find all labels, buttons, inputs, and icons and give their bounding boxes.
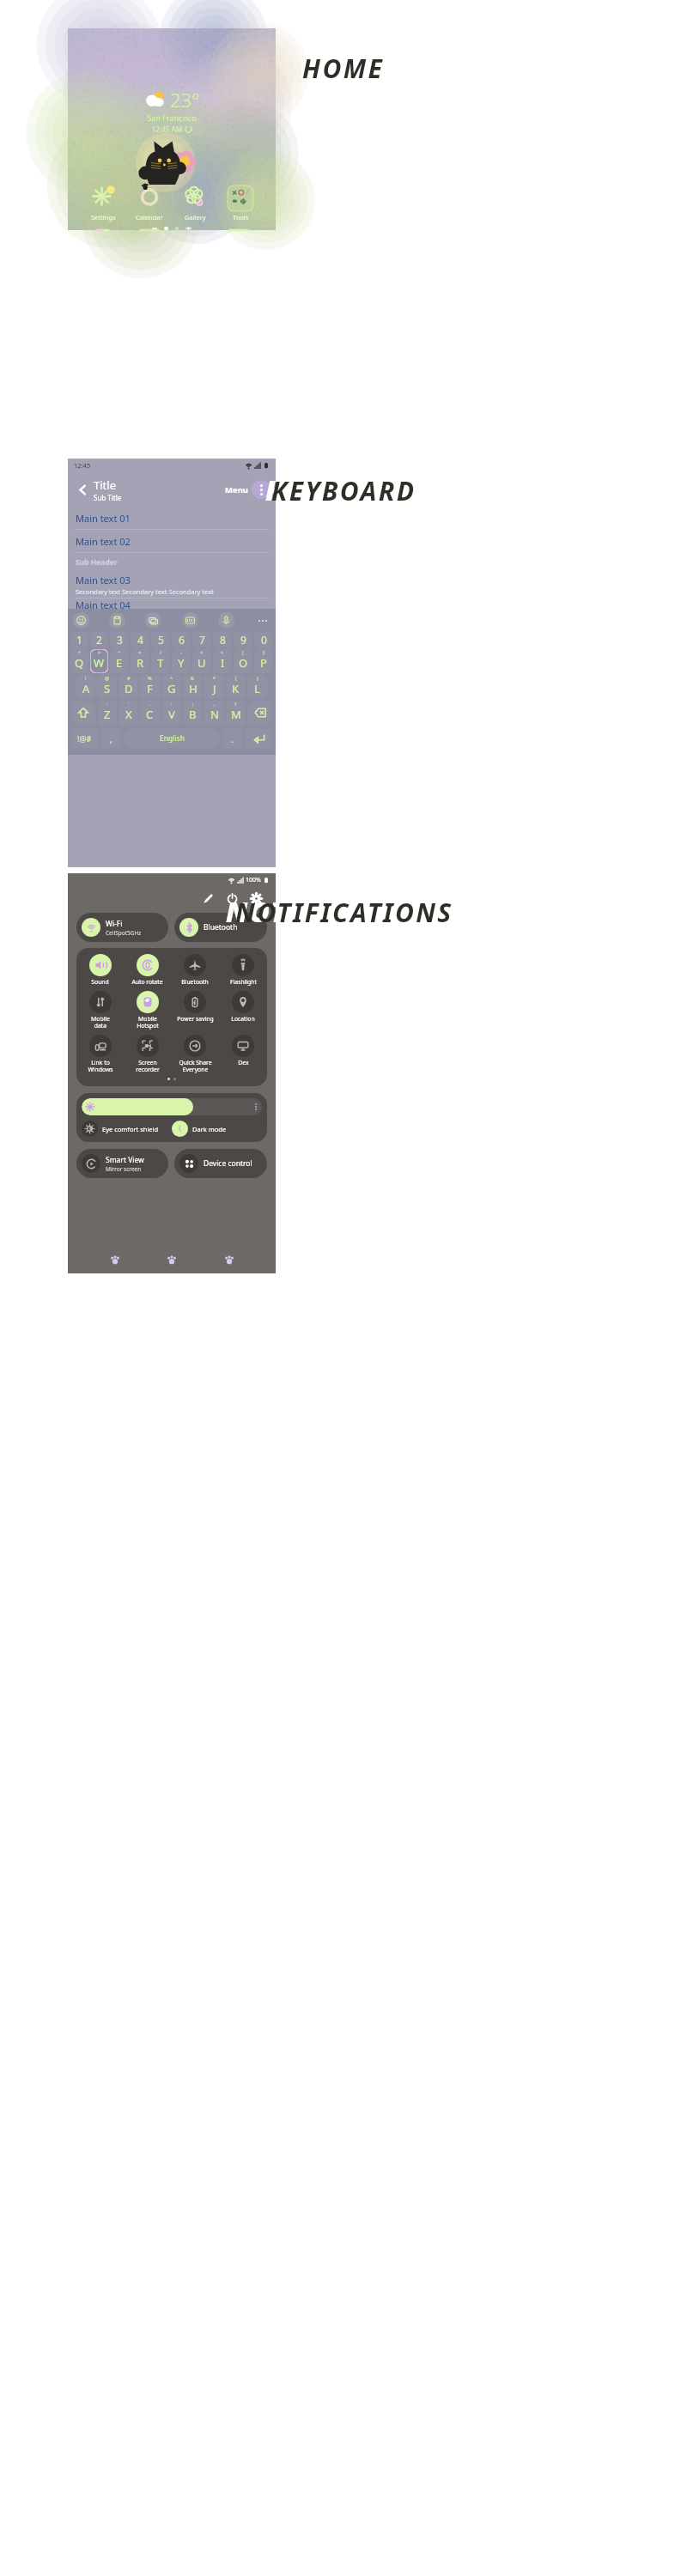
button[interactable]: + bbox=[70, 649, 88, 673]
button[interactable]: Location bbox=[219, 991, 267, 1023]
button[interactable]: 5 bbox=[151, 632, 170, 647]
button[interactable]: Power bbox=[224, 890, 240, 906]
button[interactable]: Sound bbox=[76, 954, 124, 986]
button[interactable]: Enter bbox=[246, 729, 272, 748]
button[interactable]: Edit bbox=[200, 890, 216, 906]
button[interactable]: 0 bbox=[254, 632, 273, 647]
button[interactable]: [ bbox=[234, 649, 252, 673]
button[interactable]: × bbox=[90, 649, 108, 673]
button[interactable]: Power saving bbox=[171, 991, 219, 1023]
button[interactable]: 6 bbox=[172, 632, 191, 647]
button[interactable] bbox=[82, 1098, 262, 1115]
staticText: 6 bbox=[179, 633, 185, 647]
button[interactable]: Calendar bbox=[134, 185, 165, 222]
button[interactable]: Backspace bbox=[248, 702, 272, 724]
button[interactable]: . bbox=[222, 729, 242, 748]
button[interactable]: 7 bbox=[192, 632, 211, 647]
button[interactable]: * bbox=[204, 675, 224, 699]
button[interactable]: English bbox=[125, 729, 219, 748]
button[interactable]: - bbox=[172, 649, 191, 673]
button[interactable]: ÷ bbox=[110, 649, 129, 673]
button[interactable]: Eye comfort shield bbox=[82, 1121, 172, 1137]
button[interactable]: Auto rotate bbox=[124, 954, 171, 986]
button[interactable]: Smart View bbox=[76, 1149, 168, 1178]
button[interactable]: Shift bbox=[71, 702, 95, 724]
button[interactable]: ! bbox=[76, 675, 95, 699]
button[interactable]: & bbox=[183, 675, 203, 699]
button[interactable]: Settings bbox=[88, 185, 118, 222]
staticText: ! bbox=[85, 675, 87, 681]
button[interactable]: , bbox=[204, 701, 224, 725]
button[interactable]: Home bbox=[161, 1249, 182, 1270]
button[interactable]: Emoji bbox=[73, 612, 89, 629]
button[interactable]: Quick Share Everyone bbox=[171, 1035, 219, 1073]
button[interactable]: - bbox=[98, 701, 117, 725]
button[interactable]: Mobile data bbox=[76, 991, 124, 1030]
button[interactable]: Gallery bbox=[180, 185, 210, 222]
button[interactable]: < bbox=[192, 649, 211, 673]
button[interactable]: Main text 01 bbox=[68, 507, 276, 529]
button[interactable]: GIF bbox=[182, 612, 198, 629]
staticText: X bbox=[125, 707, 132, 722]
button[interactable]: Bluetooth bbox=[174, 913, 267, 942]
button[interactable]: Menu bbox=[222, 481, 252, 499]
button[interactable]: Dark mode bbox=[172, 1121, 262, 1137]
staticText: J bbox=[213, 681, 216, 696]
button[interactable]: 8 bbox=[213, 632, 232, 647]
button[interactable]: Back bbox=[71, 478, 94, 501]
button[interactable]: Back bbox=[219, 1249, 240, 1270]
button[interactable]: 4 bbox=[131, 632, 149, 647]
button[interactable]: Recents bbox=[105, 1249, 125, 1270]
button[interactable]: Main text 02 bbox=[68, 530, 276, 552]
button[interactable]: Clipboard bbox=[109, 612, 125, 629]
button[interactable]: Keyboard modes bbox=[145, 612, 161, 629]
staticText: @ bbox=[105, 675, 109, 681]
staticText: C bbox=[146, 707, 154, 722]
staticText: Power saving bbox=[177, 1015, 214, 1023]
button[interactable]: ) bbox=[247, 675, 267, 699]
button[interactable]: / bbox=[151, 649, 170, 673]
button[interactable]: ^ bbox=[161, 675, 181, 699]
button[interactable]: , bbox=[101, 729, 121, 748]
button[interactable]: Bluetooth bbox=[171, 954, 219, 986]
staticText: Dark mode bbox=[192, 1125, 227, 1133]
button[interactable]: Mobile Hotspot bbox=[124, 991, 171, 1030]
button[interactable]: !@# bbox=[71, 729, 98, 748]
button[interactable]: 9 bbox=[234, 632, 252, 647]
button[interactable]: Dex bbox=[219, 1035, 267, 1066]
button[interactable]: Link to Windows bbox=[76, 1035, 124, 1073]
button[interactable]: Flashlight bbox=[219, 954, 267, 986]
button[interactable]: 2 bbox=[90, 632, 108, 647]
button[interactable]: Title bbox=[94, 477, 122, 502]
button[interactable]: = bbox=[131, 649, 149, 673]
button[interactable]: 3 bbox=[110, 632, 129, 647]
button[interactable]: Settings bbox=[248, 890, 264, 906]
button[interactable]: ( bbox=[226, 675, 246, 699]
button[interactable]: 1 bbox=[70, 632, 88, 647]
button[interactable]: More bbox=[254, 612, 271, 629]
button[interactable]: Tools bbox=[226, 185, 255, 222]
staticText: Settings bbox=[91, 213, 116, 222]
button[interactable]: % bbox=[140, 675, 160, 699]
button[interactable]: @ bbox=[97, 675, 117, 699]
button[interactable]: # bbox=[119, 675, 138, 699]
button[interactable]: > bbox=[213, 649, 232, 673]
button[interactable]: ] bbox=[254, 649, 273, 673]
button[interactable]: Device control bbox=[174, 1149, 267, 1178]
staticText: Dex bbox=[238, 1059, 249, 1066]
staticText: Bluetooth bbox=[204, 922, 238, 933]
staticText: Secondary text Secondary text Secondary … bbox=[76, 587, 214, 596]
staticText: Sub Header bbox=[76, 557, 118, 568]
button[interactable]: Main text 03 bbox=[68, 572, 276, 598]
button[interactable]: ? bbox=[226, 701, 246, 725]
button[interactable]: Wi-Fi bbox=[76, 913, 168, 942]
button[interactable]: : bbox=[161, 701, 181, 725]
button[interactable]: . bbox=[140, 701, 160, 725]
button[interactable]: ' bbox=[119, 701, 138, 725]
button[interactable]: More options bbox=[252, 480, 271, 499]
staticText: 2 bbox=[96, 633, 102, 647]
staticText: - bbox=[180, 649, 182, 655]
button[interactable]: Screen recorder bbox=[124, 1035, 171, 1073]
button[interactable]: Voice input bbox=[218, 612, 234, 629]
button[interactable]: ; bbox=[183, 701, 203, 725]
